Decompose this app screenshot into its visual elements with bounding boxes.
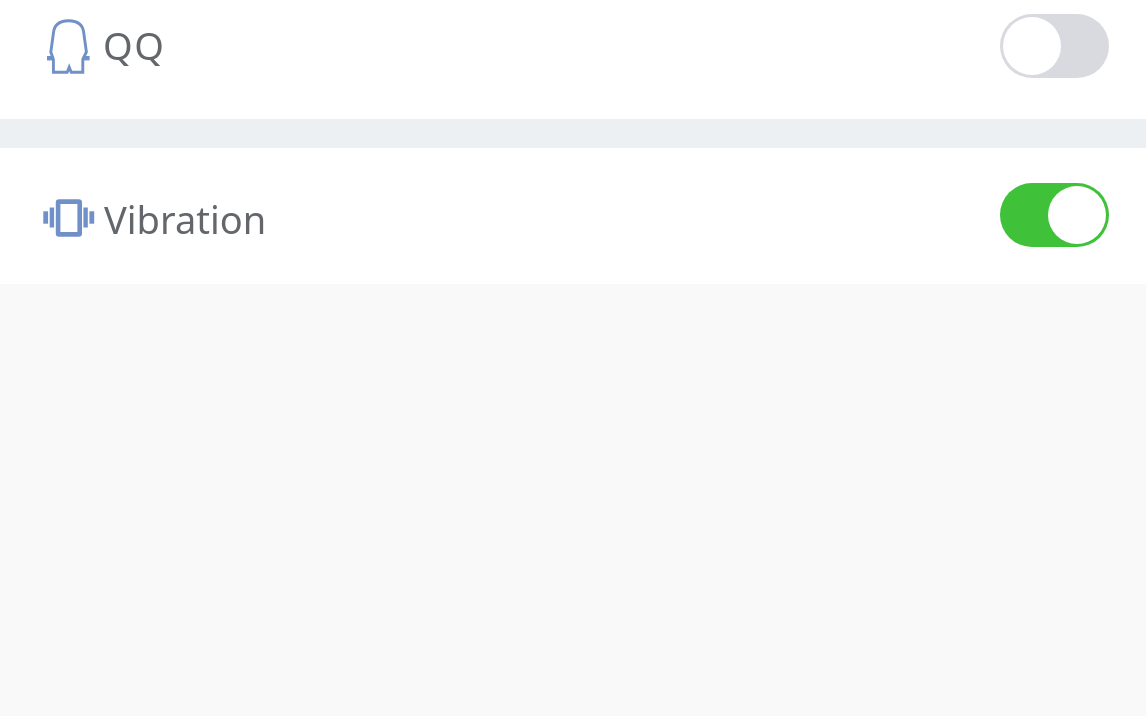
button[interactable]: Vibration <box>0 148 1146 284</box>
button[interactable]: QQ switch, off <box>1000 14 1109 78</box>
staticText: QQ <box>103 19 166 71</box>
staticText: Vibration <box>104 193 267 245</box>
button[interactable]: Vibration switch, on <box>1000 183 1109 247</box>
button[interactable]: QQ <box>0 0 1146 119</box>
